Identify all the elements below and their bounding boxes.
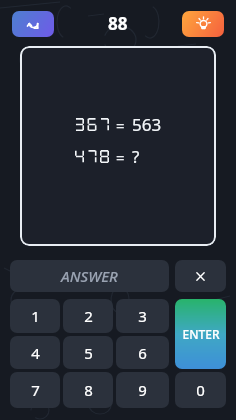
button[interactable]: 9 bbox=[116, 372, 169, 408]
staticText: ? bbox=[132, 145, 140, 168]
staticText: 88 bbox=[108, 12, 128, 35]
staticText: 8 bbox=[84, 380, 93, 400]
button[interactable]: Hint bbox=[182, 11, 224, 37]
button[interactable]: ANSWER bbox=[10, 260, 169, 292]
button[interactable]: 0 bbox=[175, 372, 226, 408]
button[interactable]: ENTER bbox=[175, 299, 226, 369]
staticText: = bbox=[116, 147, 125, 167]
staticText: 0 bbox=[196, 380, 205, 400]
button[interactable]: 4 bbox=[10, 336, 60, 369]
staticText: 563 bbox=[132, 113, 162, 136]
staticText: 9 bbox=[138, 380, 147, 400]
staticText: 5 bbox=[84, 343, 93, 363]
button[interactable]: 3 bbox=[116, 299, 169, 333]
staticText: 6 bbox=[138, 343, 147, 363]
button[interactable]: Clear bbox=[175, 260, 226, 292]
button[interactable]: 6 bbox=[116, 336, 169, 369]
button[interactable]: 1 bbox=[10, 299, 60, 333]
button[interactable]: 5 bbox=[63, 336, 113, 369]
staticText: ANSWER bbox=[61, 266, 118, 286]
button[interactable]: 2 bbox=[63, 299, 113, 333]
staticText: 3 bbox=[138, 306, 147, 326]
button[interactable]: Back bbox=[12, 11, 54, 37]
staticText: 2 bbox=[84, 306, 93, 326]
staticText: ENTER bbox=[182, 326, 220, 342]
button[interactable]: 8 bbox=[63, 372, 113, 408]
button[interactable]: 7 bbox=[10, 372, 60, 408]
staticText: 4 bbox=[31, 343, 40, 363]
staticText: 7 bbox=[31, 380, 40, 400]
staticText: 1 bbox=[31, 306, 40, 326]
staticText: = bbox=[116, 115, 125, 135]
